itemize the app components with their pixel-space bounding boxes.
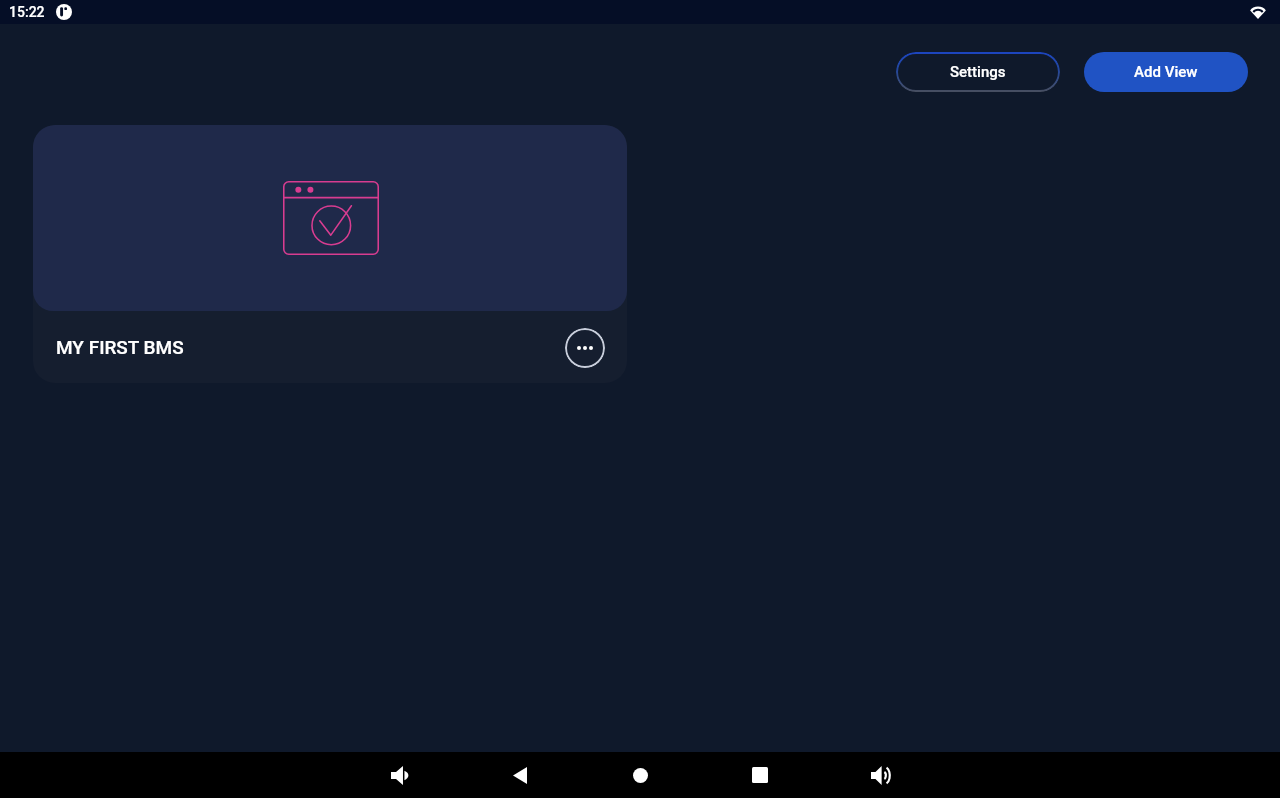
button[interactable]: Back [460, 752, 580, 798]
staticText: MY FIRST BMS [56, 336, 184, 358]
button[interactable]: Add View [1084, 52, 1248, 92]
staticText: Add View [1134, 63, 1198, 81]
button[interactable]: More options [565, 328, 605, 368]
staticText: Settings [950, 63, 1006, 81]
staticText: 15:22 [9, 4, 45, 20]
button[interactable]: Home [580, 752, 700, 798]
button[interactable]: MY FIRST BMS [33, 125, 627, 383]
button[interactable]: Volume up [820, 752, 940, 798]
button[interactable]: Recent apps [700, 752, 820, 798]
button[interactable]: Volume down [340, 752, 460, 798]
button[interactable]: Settings [896, 52, 1060, 92]
